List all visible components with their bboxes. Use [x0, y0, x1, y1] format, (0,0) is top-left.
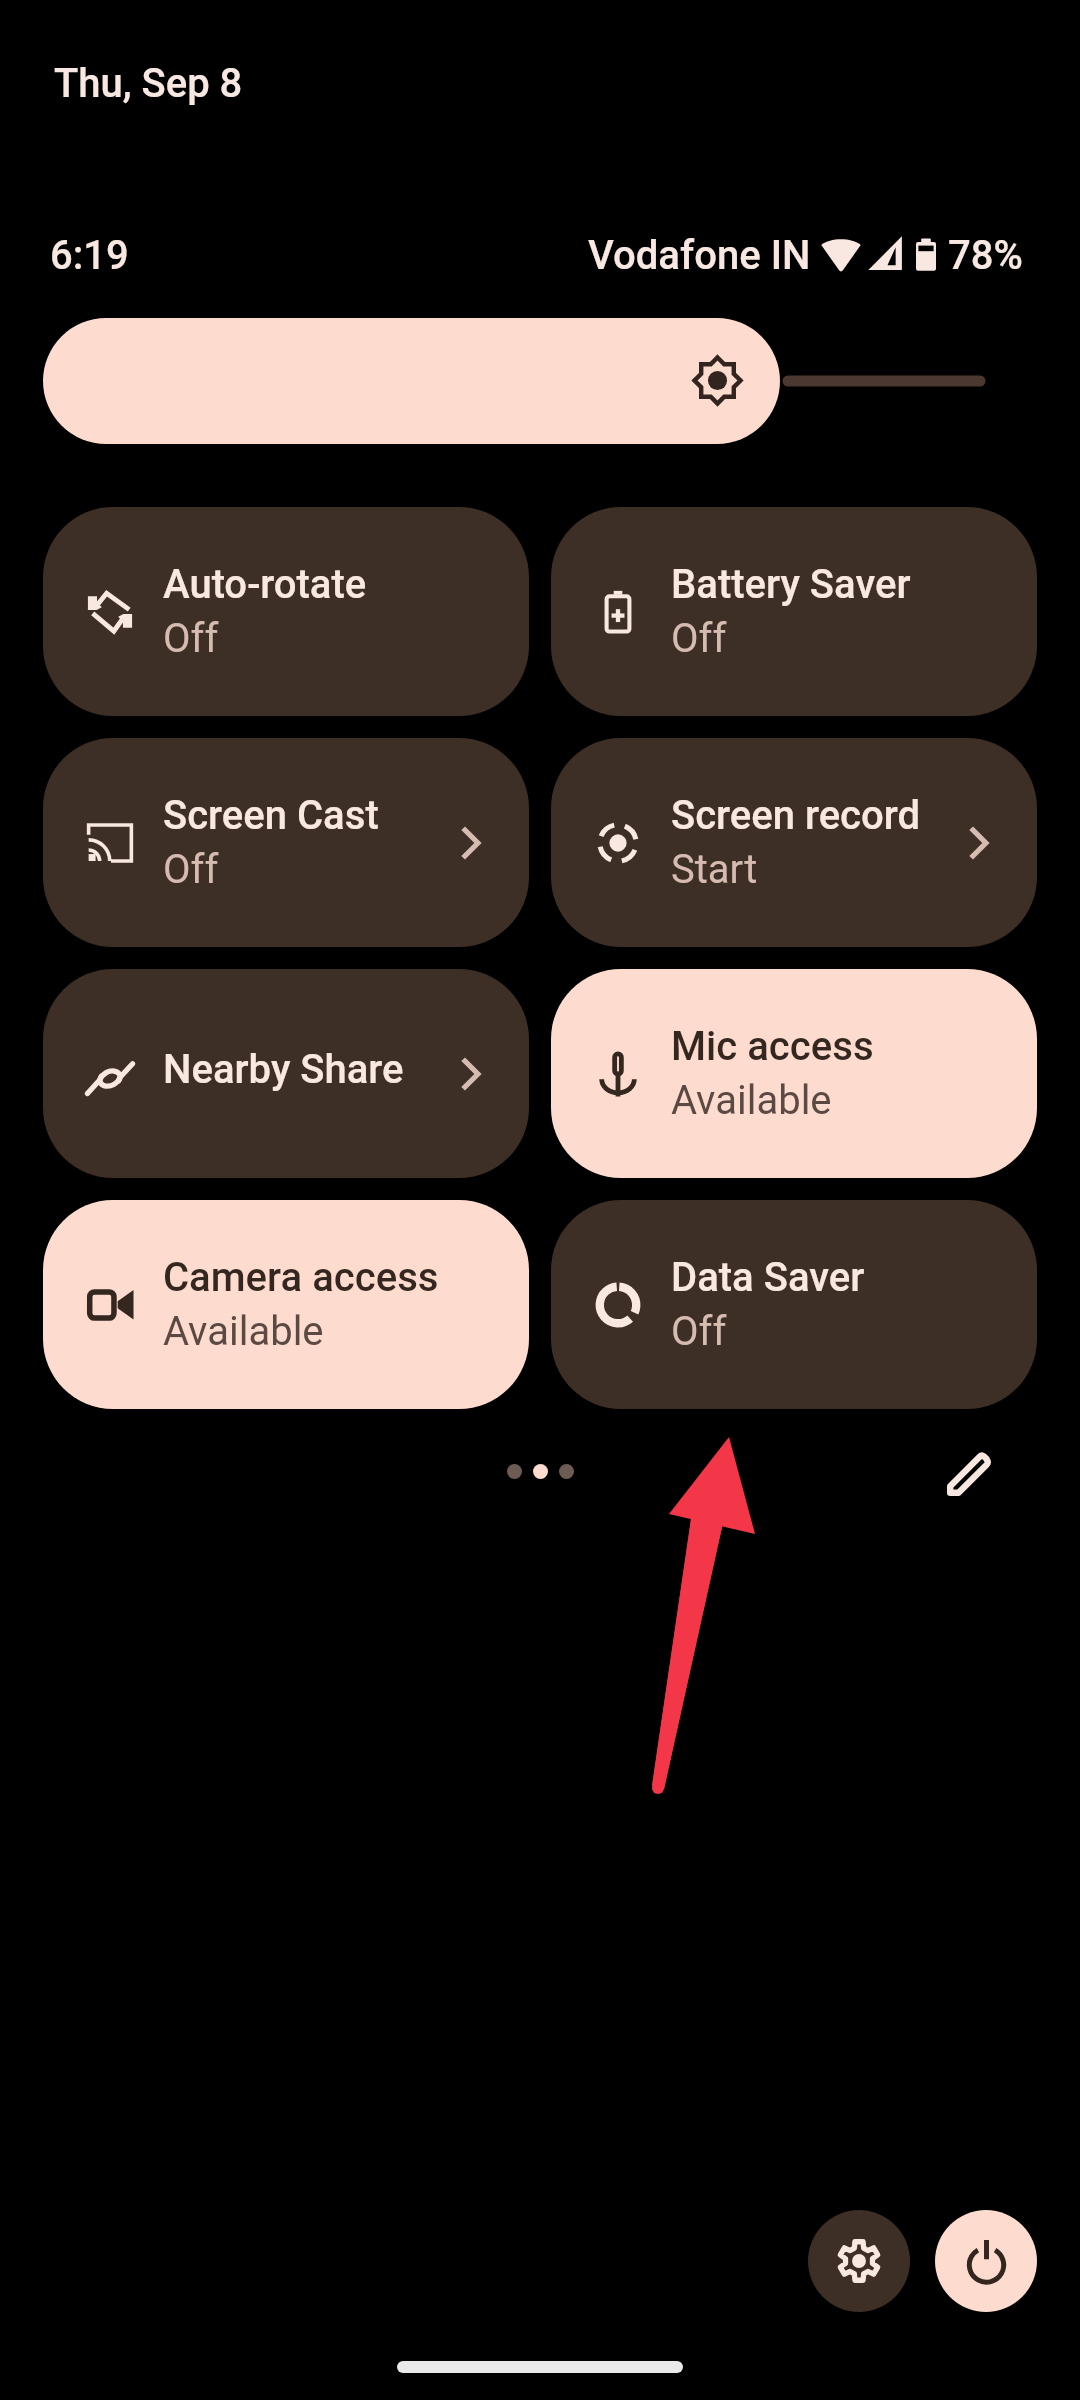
staticText: Available — [671, 1077, 832, 1124]
staticText: Nearby Share — [163, 1046, 404, 1093]
staticText: Off — [671, 1308, 727, 1355]
button[interactable]: Auto-rotate — [43, 507, 529, 716]
button[interactable]: Power — [935, 2210, 1037, 2312]
button[interactable]: Brightness — [43, 318, 1037, 444]
staticText: Screen Cast — [163, 792, 379, 839]
staticText: Camera access — [163, 1254, 439, 1301]
staticText: Start — [671, 846, 758, 893]
staticText: 6:19 — [50, 232, 129, 279]
staticText: Mic access — [671, 1023, 874, 1070]
staticText: Auto-rotate — [163, 561, 367, 608]
staticText: Vodafone IN — [588, 232, 811, 279]
staticText: Screen record — [671, 792, 921, 839]
button[interactable]: Battery Saver — [551, 507, 1037, 716]
staticText: Thu, Sep 8 — [54, 60, 243, 107]
button[interactable]: Camera access — [43, 1200, 529, 1409]
staticText: Off — [163, 615, 219, 662]
button[interactable]: Edit tiles — [930, 1433, 1010, 1513]
button[interactable]: Screen record — [551, 738, 1037, 947]
staticText: 78% — [948, 232, 1023, 279]
staticText: Off — [163, 846, 219, 893]
button[interactable]: Screen Cast — [43, 738, 529, 947]
button[interactable]: Data Saver — [551, 1200, 1037, 1409]
button[interactable]: Settings — [808, 2210, 910, 2312]
button[interactable]: Nearby Share — [43, 969, 529, 1178]
staticText: Available — [163, 1308, 324, 1355]
staticText: Off — [671, 615, 727, 662]
staticText: Battery Saver — [671, 561, 911, 608]
button[interactable]: Mic access — [551, 969, 1037, 1178]
staticText: Data Saver — [671, 1254, 865, 1301]
